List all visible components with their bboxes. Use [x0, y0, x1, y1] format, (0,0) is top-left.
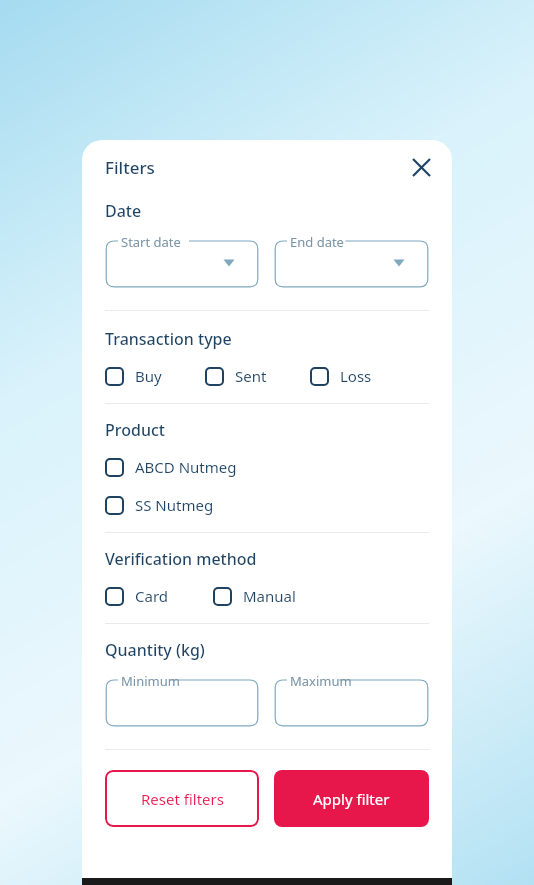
- staticText: Reset filters: [141, 789, 224, 809]
- button[interactable]: Sent: [205, 366, 310, 386]
- button[interactable]: Apply filter: [274, 770, 429, 827]
- staticText: Card: [135, 586, 169, 606]
- staticText: Buy: [135, 366, 162, 386]
- button[interactable]: Start date: [105, 232, 259, 288]
- button[interactable]: Reset filters: [105, 770, 259, 827]
- staticText: Verification method: [105, 548, 257, 570]
- staticText: End date: [290, 233, 344, 251]
- button[interactable]: Buy: [105, 366, 205, 386]
- staticText: Date: [105, 200, 142, 222]
- staticText: Start date: [121, 233, 181, 251]
- button[interactable]: Minimum: [105, 671, 259, 727]
- button[interactable]: Close: [404, 150, 438, 184]
- staticText: ABCD Nutmeg: [135, 457, 237, 477]
- staticText: Quantity (kg): [105, 639, 205, 661]
- button[interactable]: Maximum: [274, 671, 429, 727]
- staticText: Minimum: [121, 672, 180, 690]
- staticText: Loss: [340, 366, 372, 386]
- button[interactable]: Manual: [213, 586, 296, 606]
- button[interactable]: End date: [274, 232, 429, 288]
- staticText: Sent: [235, 366, 267, 386]
- button[interactable]: SS Nutmeg: [105, 495, 214, 515]
- staticText: Transaction type: [105, 328, 232, 350]
- button[interactable]: Card: [105, 586, 213, 606]
- button[interactable]: Loss: [310, 366, 372, 386]
- staticText: Apply filter: [313, 789, 390, 809]
- staticText: Product: [105, 419, 165, 441]
- staticText: Manual: [243, 586, 296, 606]
- staticText: Filters: [105, 156, 155, 179]
- button[interactable]: ABCD Nutmeg: [105, 457, 237, 477]
- staticText: SS Nutmeg: [135, 495, 214, 515]
- staticText: Maximum: [290, 672, 352, 690]
